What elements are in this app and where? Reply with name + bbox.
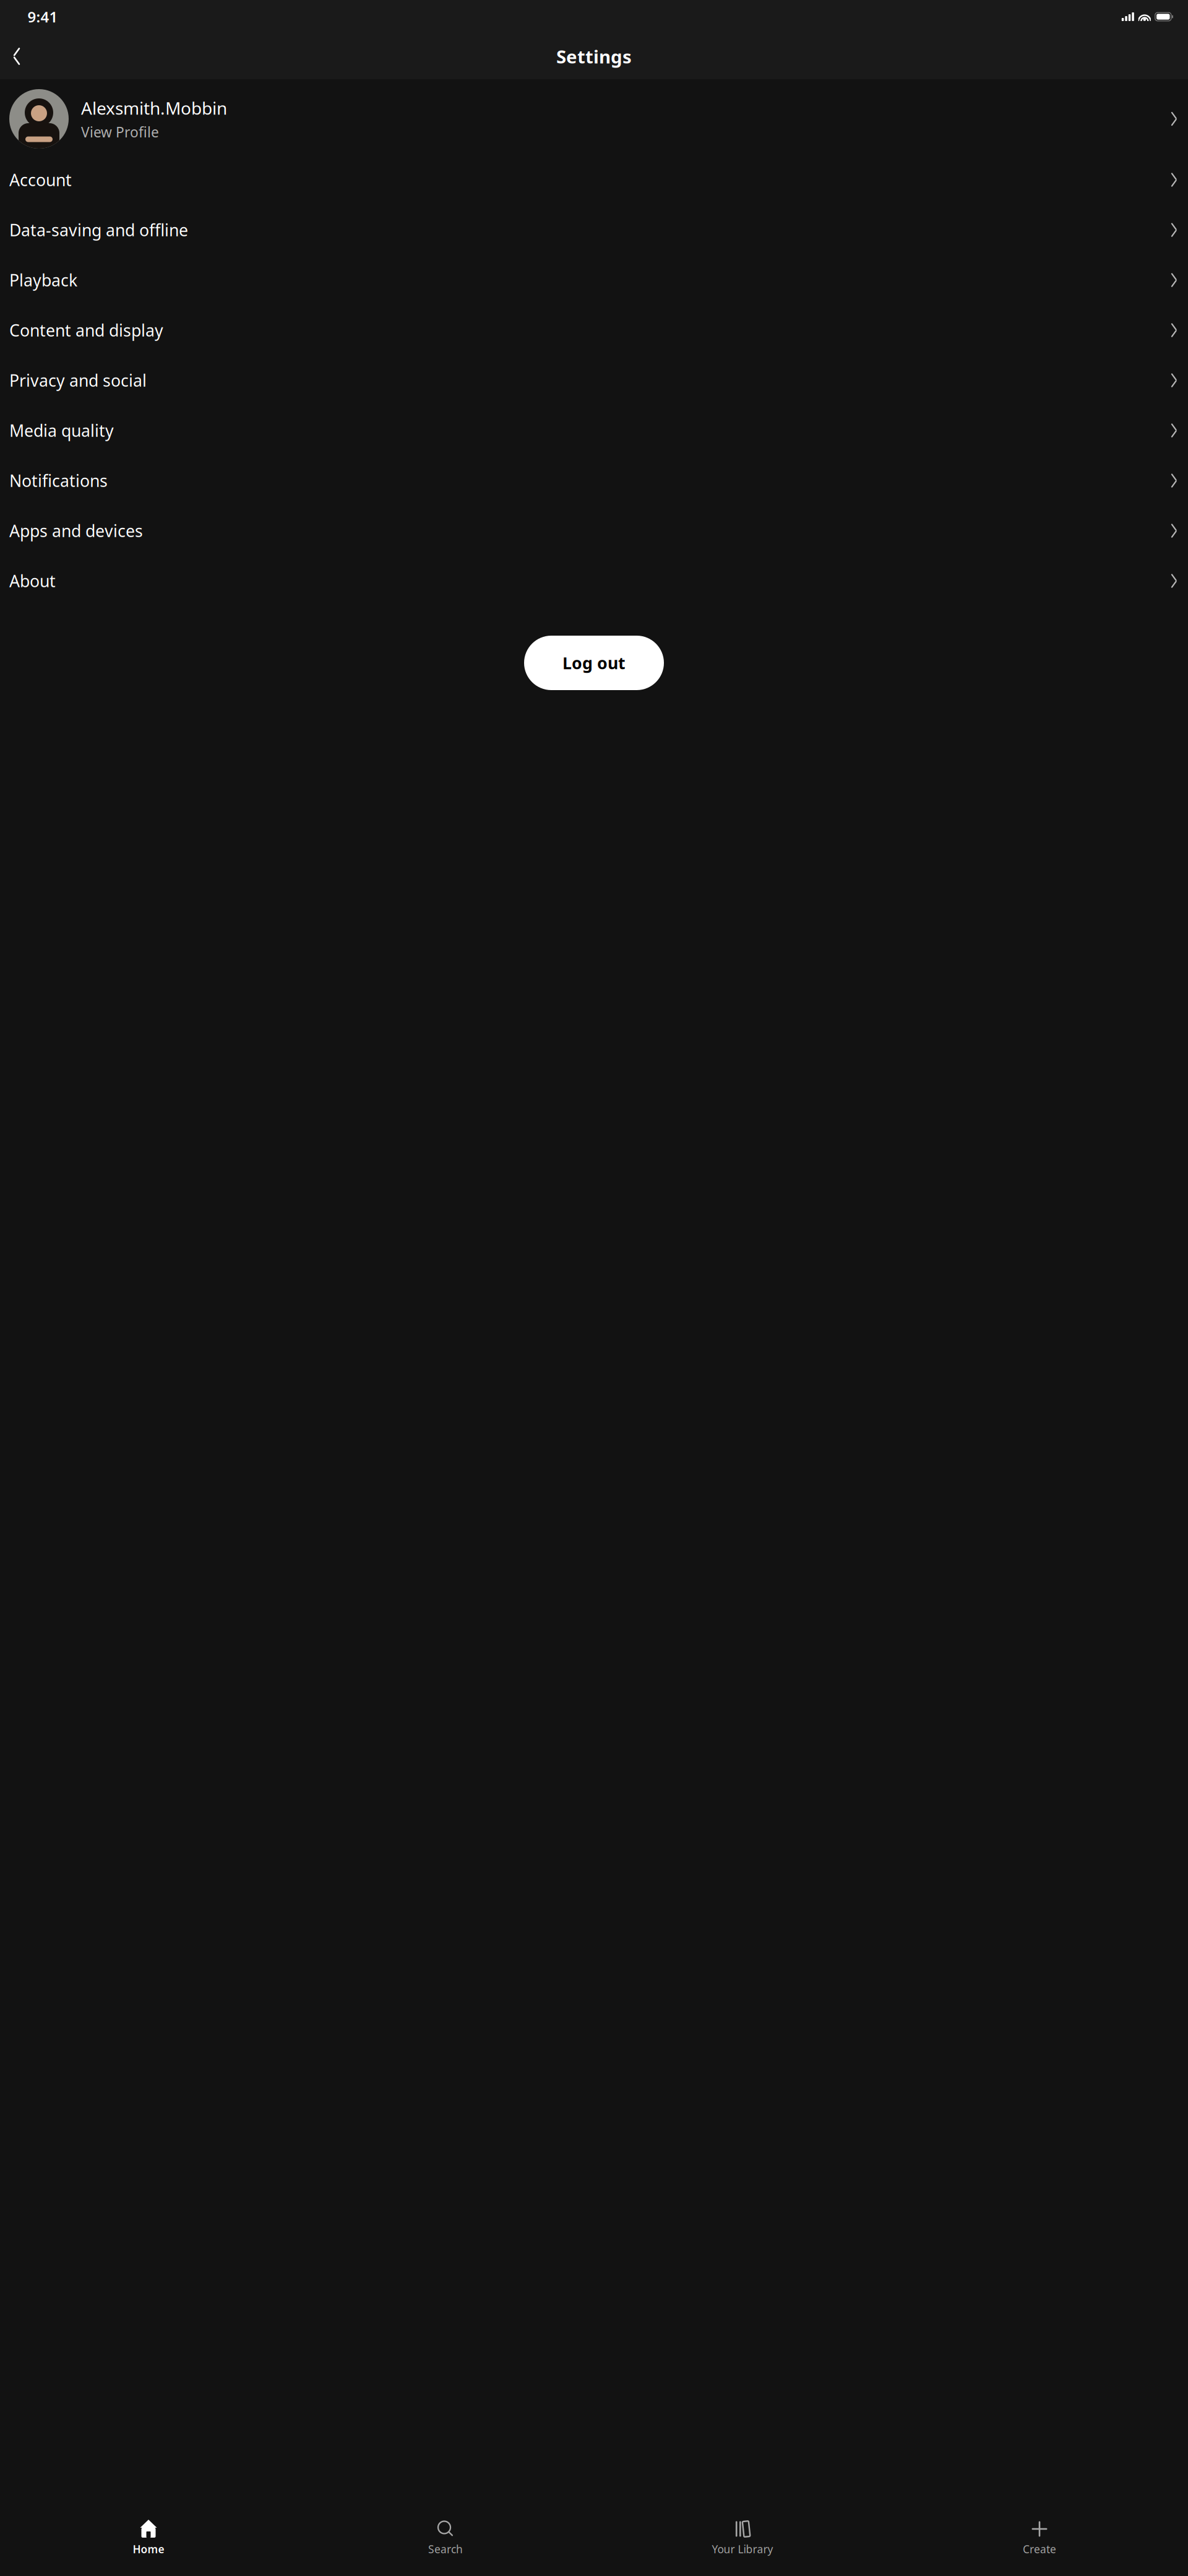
button[interactable]: Privacy and social bbox=[0, 355, 1188, 405]
staticText: Privacy and social bbox=[9, 369, 147, 391]
button[interactable]: Playback bbox=[0, 255, 1188, 305]
staticText: 9:41 bbox=[28, 7, 58, 27]
staticText: Playback bbox=[9, 269, 77, 291]
button[interactable]: Account bbox=[0, 155, 1188, 205]
staticText: Search bbox=[428, 2542, 463, 2556]
staticText: Your Library bbox=[712, 2542, 773, 2556]
button[interactable]: Search bbox=[297, 2517, 594, 2560]
button[interactable]: Media quality bbox=[0, 405, 1188, 456]
staticText: Alexsmith.Mobbin bbox=[81, 96, 227, 120]
button[interactable]: Create bbox=[891, 2517, 1188, 2560]
staticText: Media quality bbox=[9, 420, 114, 441]
button[interactable]: Your Library bbox=[594, 2517, 891, 2560]
staticText: Create bbox=[1023, 2542, 1056, 2556]
staticText: Account bbox=[9, 169, 72, 191]
button[interactable]: Content and display bbox=[0, 305, 1188, 355]
staticText: View Profile bbox=[81, 123, 159, 141]
staticText: Notifications bbox=[9, 470, 108, 492]
staticText: Settings bbox=[556, 44, 632, 68]
button[interactable]: Apps and devices bbox=[0, 506, 1188, 556]
button[interactable]: Data-saving and offline bbox=[0, 205, 1188, 255]
button[interactable]: Alexsmith.Mobbin bbox=[0, 83, 1188, 155]
staticText: About bbox=[9, 570, 56, 592]
button[interactable]: Notifications bbox=[0, 456, 1188, 506]
staticText: Data-saving and offline bbox=[9, 219, 188, 241]
button[interactable]: Back bbox=[4, 42, 30, 71]
staticText: Content and display bbox=[9, 319, 163, 341]
button[interactable]: About bbox=[0, 556, 1188, 606]
staticText: Apps and devices bbox=[9, 520, 143, 542]
button[interactable]: Log out bbox=[524, 636, 664, 690]
button[interactable]: Home bbox=[0, 2517, 297, 2560]
staticText: Home bbox=[133, 2542, 164, 2556]
staticText: Log out bbox=[562, 652, 626, 674]
